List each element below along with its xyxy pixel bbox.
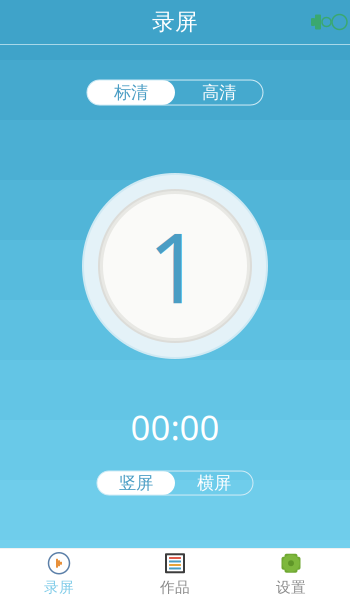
staticText: 录屏 <box>152 8 198 36</box>
button[interactable]: 标清 <box>87 80 175 105</box>
staticText: 设置 <box>276 578 306 596</box>
button[interactable]: 高清 <box>175 80 263 105</box>
staticText: 高清 <box>202 82 236 103</box>
staticText: 1 <box>147 202 202 330</box>
button[interactable]: 作品 <box>117 549 233 600</box>
button[interactable]: 声音 <box>308 1 350 43</box>
staticText: 00:00 <box>130 404 219 450</box>
button[interactable]: 竖屏 <box>97 471 175 495</box>
button[interactable]: 设置 <box>233 549 349 600</box>
button[interactable]: 开始录屏 <box>80 171 270 361</box>
staticText: 竖屏 <box>119 472 153 494</box>
button[interactable]: 横屏 <box>175 471 253 495</box>
staticText: 横屏 <box>197 472 231 494</box>
staticText: 录屏 <box>44 578 74 596</box>
staticText: 作品 <box>160 578 190 596</box>
button[interactable]: 录屏 <box>1 549 117 600</box>
staticText: 标清 <box>114 82 148 103</box>
